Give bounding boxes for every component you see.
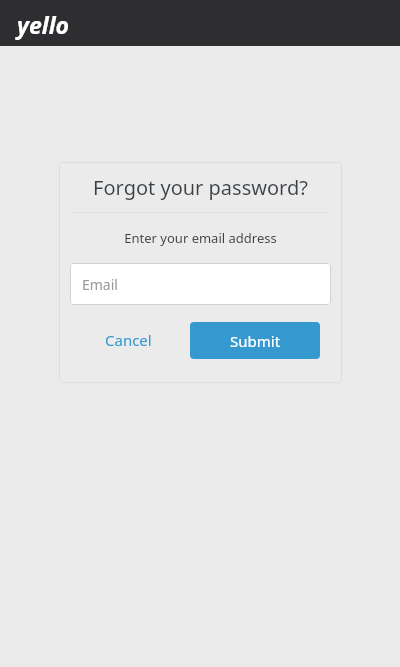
staticText: Submit	[230, 331, 281, 351]
button[interactable]: Email	[70, 263, 331, 305]
staticText: Enter your email address	[124, 229, 277, 247]
button[interactable]: Cancel	[89, 321, 168, 359]
button[interactable]: yello home	[15, 7, 71, 42]
staticText: Email	[82, 275, 118, 294]
staticText: Forgot your password?	[93, 174, 308, 201]
button[interactable]: Submit	[190, 322, 320, 359]
staticText: yello	[17, 9, 69, 40]
staticText: Cancel	[105, 330, 152, 350]
